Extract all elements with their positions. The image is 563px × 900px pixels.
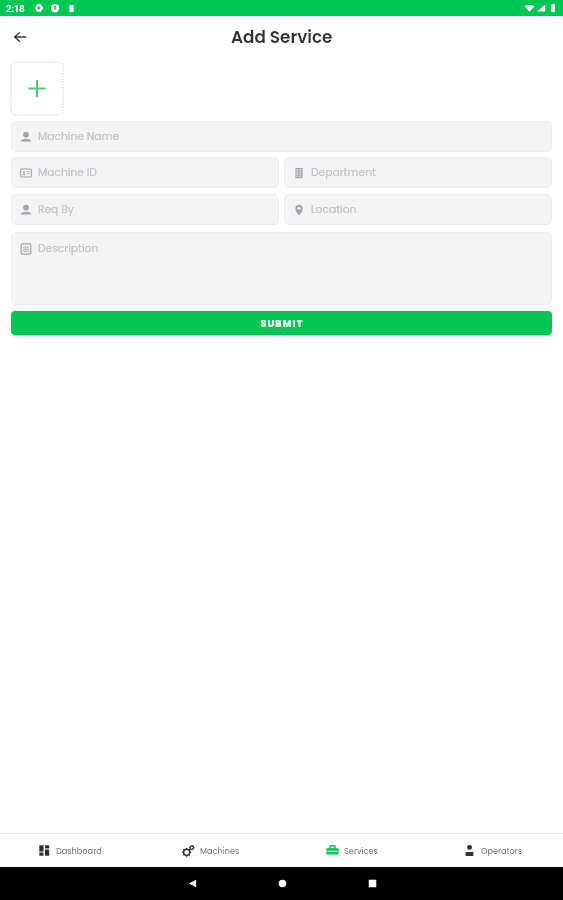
staticText: 2:18 — [6, 3, 25, 14]
staticText: Department — [311, 165, 376, 180]
staticText: Dashboard — [56, 845, 102, 856]
staticText: Machines — [200, 845, 240, 856]
button[interactable]: Dashboard — [0, 834, 140, 867]
button[interactable]: Recent apps — [344, 867, 400, 900]
staticText: SUBMIT — [260, 317, 304, 330]
button[interactable]: Machine ID — [11, 157, 279, 188]
staticText: Location — [311, 202, 357, 217]
button[interactable]: Add photo — [11, 62, 63, 115]
button[interactable]: Back — [164, 867, 220, 900]
staticText: Add Service — [231, 25, 333, 49]
staticText: Machine Name — [38, 129, 120, 144]
button[interactable]: Location — [284, 194, 552, 225]
staticText: Operators — [481, 845, 523, 856]
staticText: Services — [344, 845, 378, 856]
button[interactable]: Req By — [11, 194, 279, 225]
staticText: Req By — [38, 202, 74, 217]
button[interactable]: Back — [8, 25, 32, 49]
staticText: Machine ID — [38, 165, 97, 180]
button[interactable]: Home — [254, 867, 310, 900]
button[interactable]: Services — [281, 834, 422, 867]
staticText: Description — [38, 241, 99, 256]
button[interactable]: Description — [11, 232, 552, 305]
button[interactable]: Operators — [422, 834, 563, 867]
button[interactable]: Machines — [140, 834, 281, 867]
button[interactable]: Department — [284, 157, 552, 188]
button[interactable]: Machine Name — [11, 121, 552, 152]
button[interactable]: SUBMIT — [11, 311, 552, 335]
